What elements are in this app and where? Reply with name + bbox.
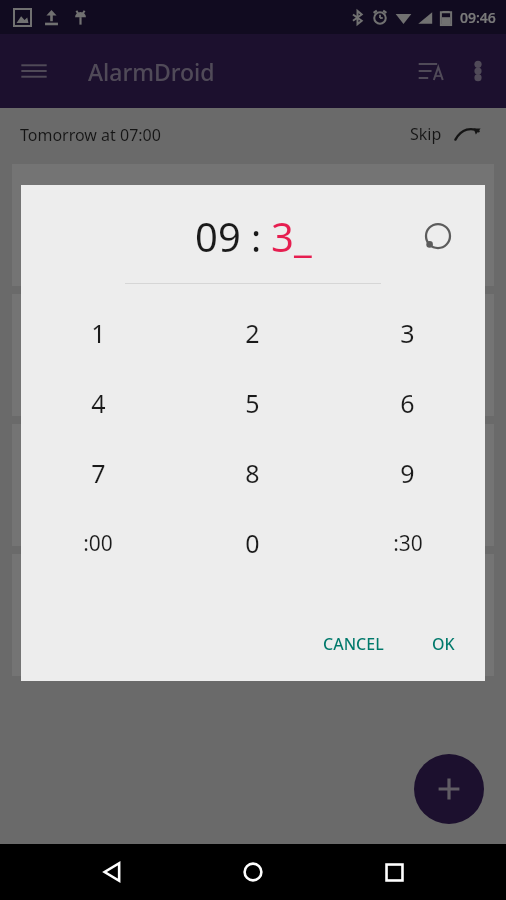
button[interactable]: 0 (175, 508, 330, 578)
button[interactable]: 1 (21, 298, 175, 368)
button[interactable]: 2 (175, 298, 330, 368)
button[interactable]: Recent apps (366, 844, 422, 900)
button[interactable]: Navigation menu (8, 45, 60, 97)
button[interactable] (12, 424, 494, 546)
button[interactable]: Home (225, 844, 281, 900)
staticText: 4 (91, 386, 106, 420)
button[interactable]: Back (85, 844, 141, 900)
button[interactable]: :00 (21, 508, 175, 578)
staticText: 7 (91, 456, 106, 490)
button[interactable] (12, 294, 494, 416)
staticText: 6 (400, 386, 415, 420)
button[interactable]: :30 (330, 508, 485, 578)
staticText: AlarmDroid (88, 56, 215, 87)
staticText: 9 (400, 456, 415, 490)
staticText: CANCEL (323, 633, 384, 655)
button[interactable]: 9 (330, 438, 485, 508)
staticText: 0 (245, 526, 260, 560)
button[interactable]: 3 (330, 298, 485, 368)
staticText: 09 (195, 209, 241, 263)
staticText: _ (294, 209, 312, 263)
staticText: 2 (245, 316, 260, 350)
staticText: 3 (271, 209, 294, 263)
staticText: : (241, 211, 271, 263)
staticText: 1 (91, 316, 106, 350)
button[interactable]: 6 (330, 368, 485, 438)
staticText: 3 (400, 316, 415, 350)
button[interactable]: 4 (21, 368, 175, 438)
button[interactable]: Switch to clock input (417, 215, 459, 257)
button[interactable]: Add alarm (414, 754, 484, 824)
button[interactable]: 8 (175, 438, 330, 508)
staticText: Skip (410, 123, 442, 145)
button[interactable] (12, 554, 494, 676)
staticText: :00 (83, 529, 113, 558)
staticText: 5 (245, 386, 260, 420)
button[interactable]: 7 (21, 438, 175, 508)
button[interactable] (12, 164, 494, 286)
staticText: 09:46 (460, 8, 496, 27)
staticText: :30 (393, 529, 423, 558)
staticText: 8 (245, 456, 260, 490)
button[interactable]: Skip (410, 120, 482, 148)
staticText: Tomorrow at 07:00 (20, 124, 161, 146)
button[interactable]: 5 (175, 368, 330, 438)
button[interactable]: More options (456, 49, 500, 93)
button[interactable]: OK (418, 623, 469, 665)
staticText: OK (432, 633, 455, 655)
button[interactable]: Sort (406, 46, 456, 96)
button[interactable]: CANCEL (309, 623, 398, 665)
